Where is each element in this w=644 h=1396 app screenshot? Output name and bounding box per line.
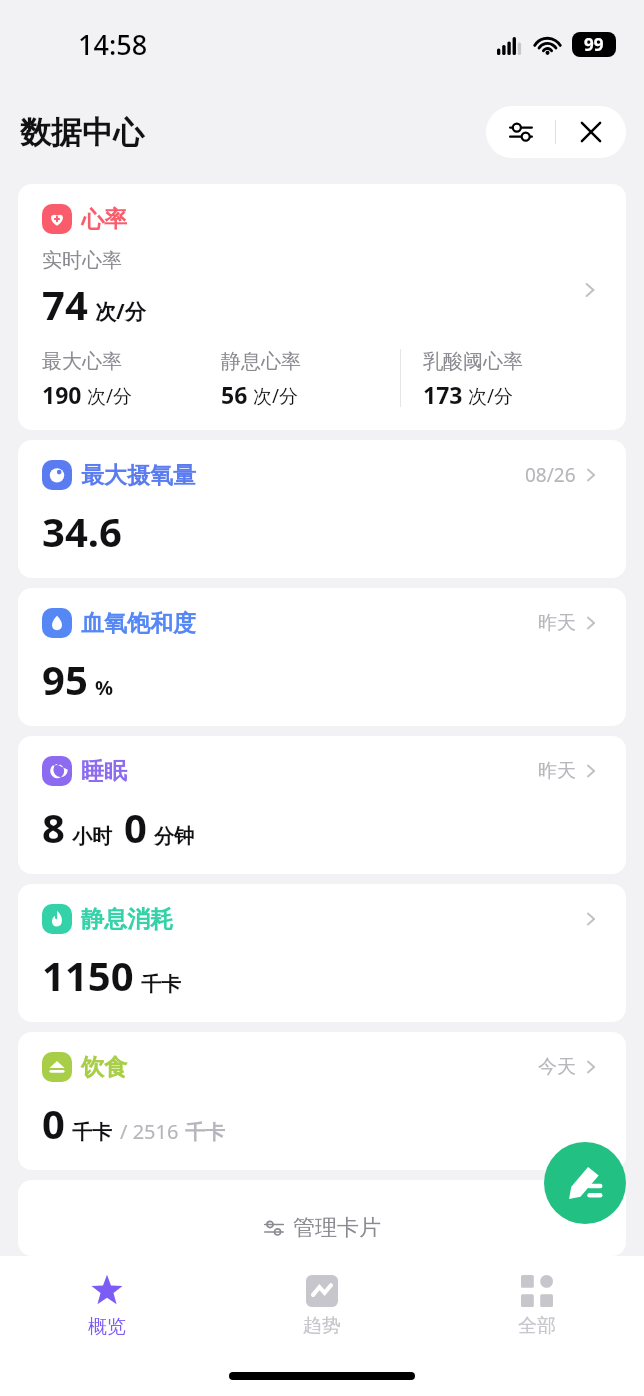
staticText: 千卡 (72, 1120, 112, 1145)
staticText: 乳酸阈心率 (423, 349, 523, 374)
staticText: 今天 (538, 1055, 576, 1079)
staticText: / 2516 (120, 1118, 179, 1145)
staticText: 千卡 (185, 1120, 225, 1145)
button[interactable]: 记录 (544, 1142, 626, 1224)
staticText: 昨天 (538, 611, 576, 635)
staticText: 95 (42, 652, 88, 706)
button[interactable]: 管理卡片 (18, 1180, 626, 1256)
button[interactable]: 筛选 (486, 106, 555, 158)
staticText: 74 (42, 277, 88, 331)
staticText: 次/分 (95, 297, 146, 326)
button[interactable]: 最大摄氧量 (18, 440, 626, 578)
button[interactable]: 全部 (429, 1256, 644, 1356)
button[interactable]: 静息消耗 (18, 884, 626, 1022)
staticText: 昨天 (538, 759, 576, 783)
staticText: 静息心率 (221, 349, 301, 374)
staticText: 睡眠 (81, 757, 127, 786)
staticText: 34.6 (42, 504, 122, 558)
staticText: 心率 (81, 205, 127, 234)
staticText: 血氧饱和度 (81, 609, 196, 638)
button[interactable]: 趋势 (214, 1256, 429, 1356)
staticText: 56 (221, 379, 248, 410)
button[interactable]: 睡眠 (18, 736, 626, 874)
staticText: 8 (42, 800, 65, 854)
button[interactable]: 关闭 (556, 106, 626, 158)
staticText: 小时 (72, 824, 112, 849)
staticText: 最大摄氧量 (81, 461, 196, 490)
staticText: 数据中心 (20, 113, 144, 152)
staticText: 千卡 (141, 972, 181, 997)
staticText: 08/26 (525, 462, 576, 488)
staticText: 最大心率 (42, 349, 122, 374)
staticText: 0 (42, 1096, 65, 1150)
button[interactable]: 概览 (0, 1256, 214, 1356)
staticText: 次/分 (253, 383, 299, 409)
staticText: 分钟 (154, 824, 194, 849)
staticText: 190 (42, 379, 82, 410)
button[interactable]: 心率 (18, 184, 626, 430)
staticText: 173 (423, 379, 463, 410)
staticText: 实时心率 (42, 248, 122, 273)
staticText: 概览 (88, 1315, 126, 1339)
staticText: 饮食 (81, 1053, 127, 1082)
staticText: 全部 (518, 1314, 556, 1338)
button[interactable]: 饮食 (18, 1032, 626, 1170)
staticText: % (95, 674, 114, 701)
staticText: 次/分 (468, 383, 514, 409)
staticText: 趋势 (303, 1314, 341, 1338)
staticText: 99 (584, 33, 604, 56)
staticText: 0 (124, 800, 147, 854)
staticText: 次/分 (87, 383, 133, 409)
button[interactable]: 血氧饱和度 (18, 588, 626, 726)
staticText: 管理卡片 (293, 1214, 381, 1242)
staticText: 1150 (42, 948, 134, 1002)
staticText: 静息消耗 (81, 905, 173, 934)
staticText: 14:58 (78, 26, 148, 63)
